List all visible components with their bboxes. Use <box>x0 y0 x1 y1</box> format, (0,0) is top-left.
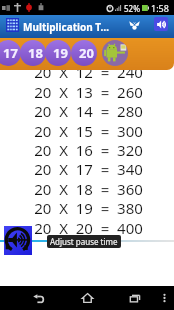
button[interactable]: 20 X 16 = 320 <box>1 140 174 159</box>
button[interactable]: 18 <box>20 40 46 66</box>
staticText: 20 <box>79 44 94 62</box>
button[interactable]: 20 X 13 = 260 <box>1 82 174 101</box>
staticText: 1:58 <box>151 2 169 14</box>
button[interactable]: Back <box>18 286 58 310</box>
button[interactable]: 20 X 17 = 340 <box>1 159 174 178</box>
button[interactable]: Share <box>127 18 141 32</box>
staticText: 19 <box>53 44 68 62</box>
button[interactable]: Recent apps <box>115 286 155 310</box>
button[interactable]: More options <box>156 286 173 310</box>
button[interactable]: 17 <box>0 40 21 66</box>
staticText: 18 <box>28 44 43 62</box>
button[interactable]: Home <box>67 286 107 310</box>
button[interactable]: 20 <box>71 40 97 66</box>
staticText: 20 X 17 = 340 <box>34 159 143 178</box>
button[interactable]: Android robot <box>102 40 128 66</box>
button[interactable]: 20 X 15 = 300 <box>1 121 174 140</box>
staticText: Adjust pause time <box>50 236 118 247</box>
button[interactable]: 20 X 19 = 380 <box>1 198 174 217</box>
staticText: 20 X 14 = 280 <box>34 101 143 120</box>
button[interactable]: 20 X 14 = 280 <box>1 101 174 120</box>
button[interactable]: 20 X 18 = 360 <box>1 179 174 198</box>
button[interactable]: Sound <box>154 17 168 31</box>
staticText: 20 X 12 = 240 <box>34 62 143 81</box>
button[interactable]: 19 <box>45 40 71 66</box>
staticText: 20 X 13 = 260 <box>34 82 143 101</box>
staticText: 20 X 19 = 380 <box>34 198 143 217</box>
button[interactable]: 20 X 12 = 240 <box>1 62 174 81</box>
staticText: 20 X 20 = 400 <box>34 218 143 237</box>
staticText: 20 X 15 = 300 <box>34 121 143 140</box>
staticText: 20 X 18 = 360 <box>34 179 143 198</box>
button[interactable]: Adjust pause time <box>4 226 32 255</box>
staticText: 17 <box>3 44 18 62</box>
staticText: 52% <box>124 3 140 14</box>
button[interactable]: 20 X 20 = 400 <box>1 218 174 237</box>
staticText: 20 X 16 = 320 <box>34 140 143 159</box>
staticText: Multiplication T… <box>23 20 110 34</box>
